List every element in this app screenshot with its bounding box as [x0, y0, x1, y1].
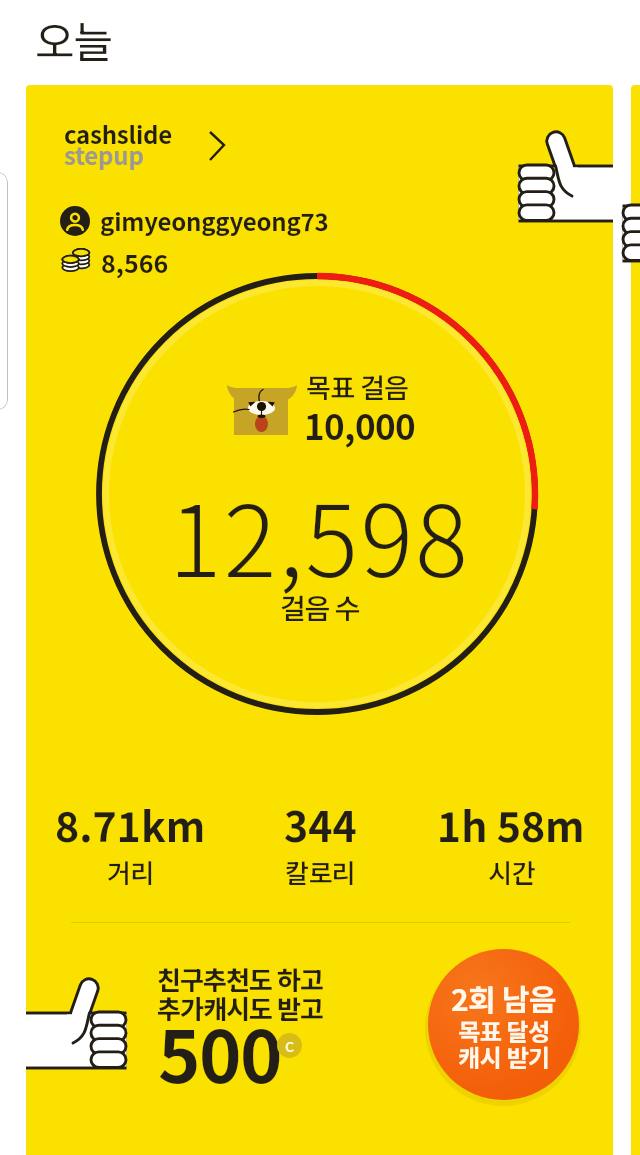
button[interactable]: 1h 58m [401, 794, 613, 891]
staticText: 8,566 [101, 244, 169, 280]
staticText: 칼로리 [285, 853, 356, 891]
staticText: 8.71km [55, 794, 206, 853]
staticText: 12,598 [169, 463, 471, 605]
staticText: 2회 남음 [451, 976, 557, 1019]
staticText: 목표 달성 [458, 1013, 550, 1048]
staticText: 목표 걸음 [306, 367, 409, 406]
button[interactable]: Open [208, 130, 228, 162]
button[interactable] [631, 85, 640, 1155]
staticText: 걸음 수 [280, 587, 360, 628]
button[interactable]: 2회 남음 [428, 949, 579, 1100]
staticText: stepup [64, 137, 144, 172]
staticText: 500 [158, 999, 281, 1103]
staticText: 캐시 받기 [458, 1039, 550, 1074]
staticText: 오늘 [35, 8, 113, 70]
button[interactable]: 친구추천도 하고 [151, 955, 361, 1155]
staticText: 거리 [107, 853, 154, 891]
staticText: cashslide [64, 116, 172, 151]
staticText: gimyeonggyeong73 [100, 203, 329, 238]
staticText: 시간 [488, 853, 535, 891]
staticText: 친구추천도 하고 [157, 960, 324, 998]
button[interactable]: cashslide [56, 115, 236, 177]
button[interactable]: 8.71km [26, 794, 240, 891]
staticText: 344 [284, 794, 357, 853]
staticText: 추가캐시도 받고 [157, 989, 324, 1027]
button[interactable] [0, 172, 8, 410]
button[interactable]: cashslide [26, 85, 613, 1155]
staticText: C [285, 1036, 295, 1056]
staticText: 1h 58m [437, 794, 585, 853]
button[interactable]: 344 [210, 794, 430, 891]
staticText: 10,000 [304, 399, 416, 450]
